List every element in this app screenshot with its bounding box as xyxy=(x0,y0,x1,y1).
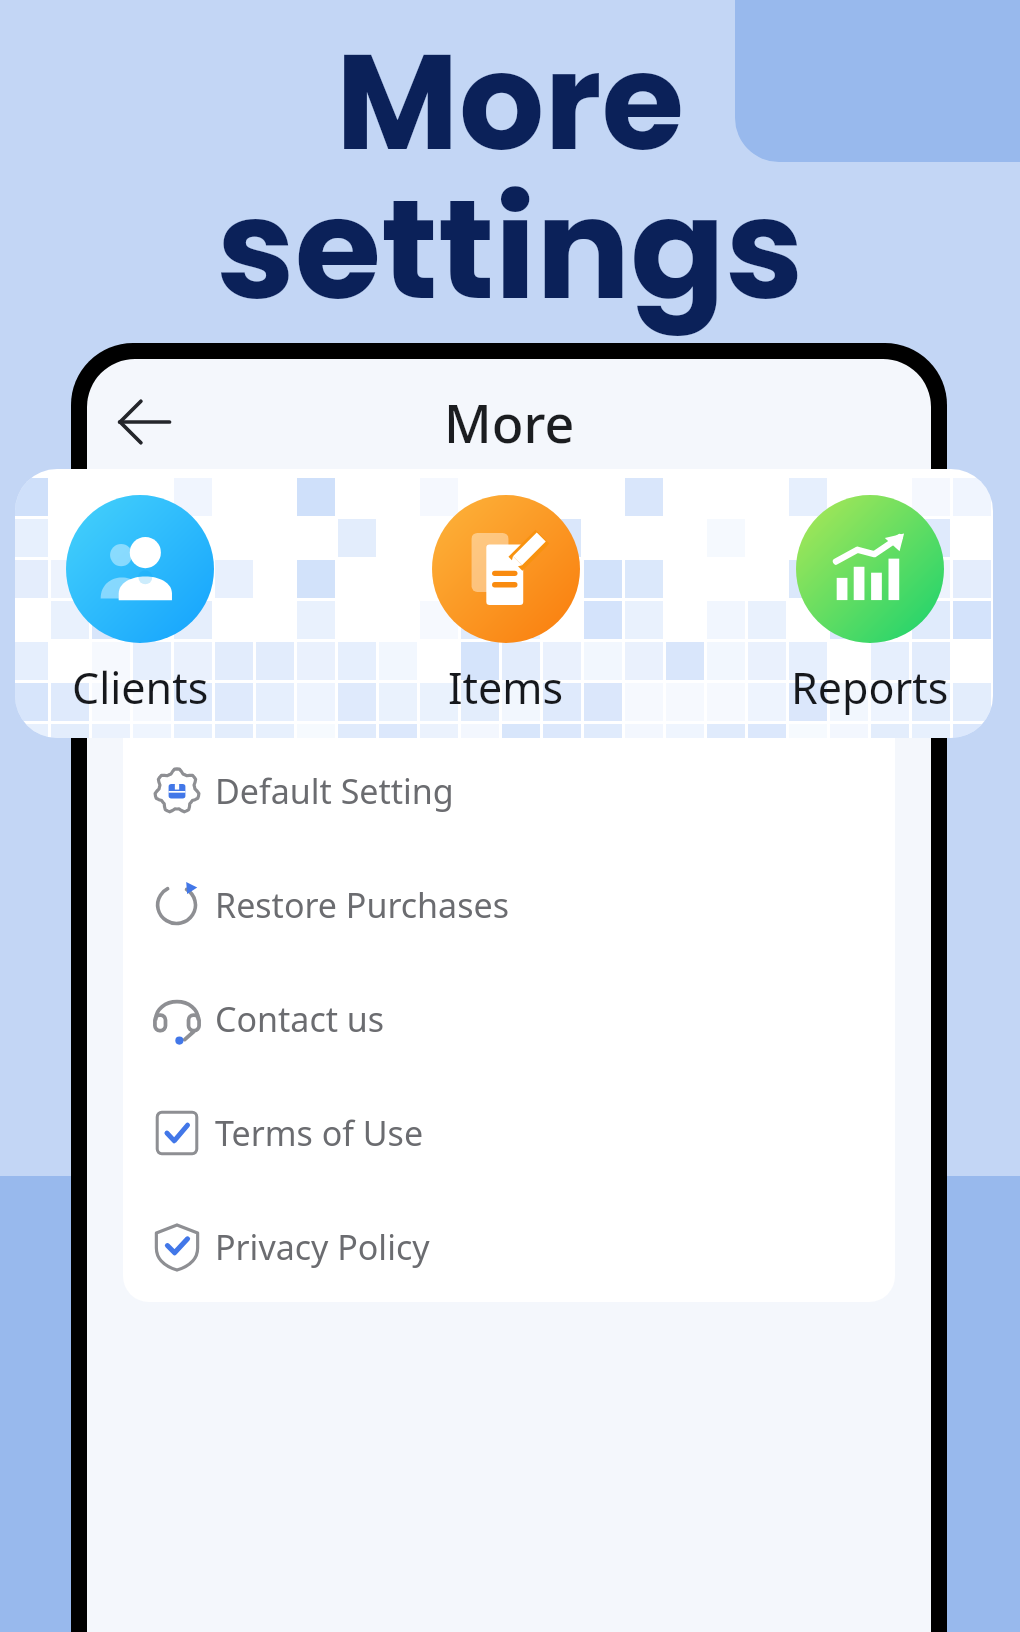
staticText: Default Setting xyxy=(215,768,454,814)
staticText: Items xyxy=(448,658,564,717)
staticText: Clients xyxy=(72,658,209,717)
staticText: More xyxy=(0,8,1020,196)
staticText: Privacy Policy xyxy=(215,1224,430,1270)
staticText: settings xyxy=(0,151,1020,347)
button[interactable]: Items xyxy=(396,495,616,717)
staticText: Contact us xyxy=(215,996,385,1042)
button[interactable]: Privacy Policy xyxy=(123,1190,895,1302)
staticText: Restore Purchases xyxy=(215,882,509,928)
staticText: More xyxy=(444,387,575,458)
button[interactable]: Contact us xyxy=(123,962,895,1076)
button[interactable]: Terms of Use xyxy=(123,1076,895,1190)
button[interactable]: Reports xyxy=(760,495,980,717)
button[interactable]: Back xyxy=(101,379,187,465)
button[interactable]: Default Setting xyxy=(123,734,895,848)
button[interactable]: Clients xyxy=(30,495,250,717)
staticText: Terms of Use xyxy=(215,1110,424,1156)
staticText: Reports xyxy=(791,658,949,717)
button[interactable]: Restore Purchases xyxy=(123,848,895,962)
